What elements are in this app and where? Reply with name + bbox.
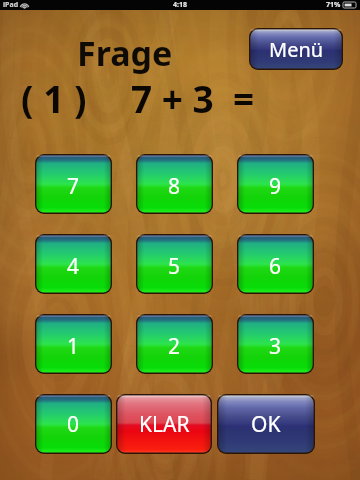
button[interactable]: 3 [237,314,314,374]
staticText: ( 1 ) [21,73,87,123]
button[interactable]: 7 [35,154,112,214]
button[interactable]: 0 [35,394,112,454]
staticText: Frage [77,30,173,76]
button[interactable]: OK [217,394,315,454]
staticText: = [233,73,255,123]
staticText: 6 [269,252,282,281]
staticText: 8 [168,172,181,201]
staticText: 1 [67,332,80,361]
button[interactable]: KLAR [116,394,212,454]
staticText: KLAR [139,410,190,439]
staticText: 5 [168,252,181,281]
button[interactable]: 1 [35,314,112,374]
staticText: 71% [326,0,341,10]
staticText: Menü [269,36,324,63]
staticText: 4 [67,252,80,281]
button[interactable]: 9 [237,154,314,214]
staticText: 2 [168,332,181,361]
staticText: 7 + 3 [131,73,214,123]
staticText: 4:18 [173,0,187,10]
staticText: 3 [269,332,282,361]
staticText: 0 [67,410,80,439]
button[interactable]: 4 [35,234,112,294]
button[interactable]: 6 [237,234,314,294]
staticText: 7 [67,172,80,201]
button[interactable]: Menü [249,28,343,70]
button[interactable]: 2 [136,314,213,374]
button[interactable]: 5 [136,234,213,294]
staticText: OK [251,410,281,439]
button[interactable]: 8 [136,154,213,214]
staticText: iPad [3,0,19,10]
staticText: 9 [269,172,282,201]
